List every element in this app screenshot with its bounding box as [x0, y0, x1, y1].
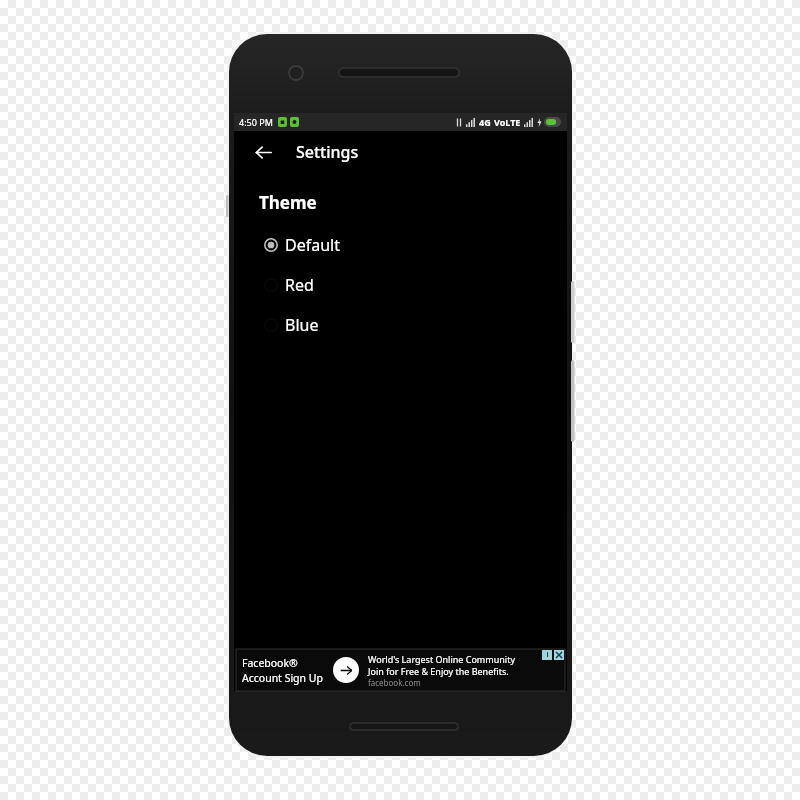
- staticText: Red: [285, 274, 314, 296]
- button[interactable]: Close ad: [554, 650, 564, 660]
- button[interactable]: Back: [247, 136, 279, 168]
- staticText: facebook.com: [368, 677, 421, 688]
- staticText: Default: [285, 234, 340, 256]
- staticText: i: [546, 650, 549, 660]
- button[interactable]: Blue: [234, 305, 567, 345]
- staticText: World's Largest Online Community: [368, 653, 515, 665]
- button[interactable]: Default: [234, 225, 567, 265]
- button[interactable]: Red: [234, 265, 567, 305]
- staticText: Facebook®: [242, 656, 298, 670]
- staticText: Account Sign Up: [242, 671, 323, 685]
- staticText: Blue: [285, 314, 319, 336]
- staticText: 4G: [479, 116, 491, 128]
- staticText: 4:50 PM: [239, 116, 273, 128]
- staticText: Settings: [296, 141, 359, 163]
- button[interactable]: Facebook®: [236, 649, 565, 691]
- staticText: Join for Free & Enjoy the Benefits.: [368, 665, 509, 677]
- button[interactable]: Ad info: [542, 650, 552, 660]
- staticText: VoLTE: [494, 116, 521, 128]
- staticText: Theme: [259, 191, 317, 214]
